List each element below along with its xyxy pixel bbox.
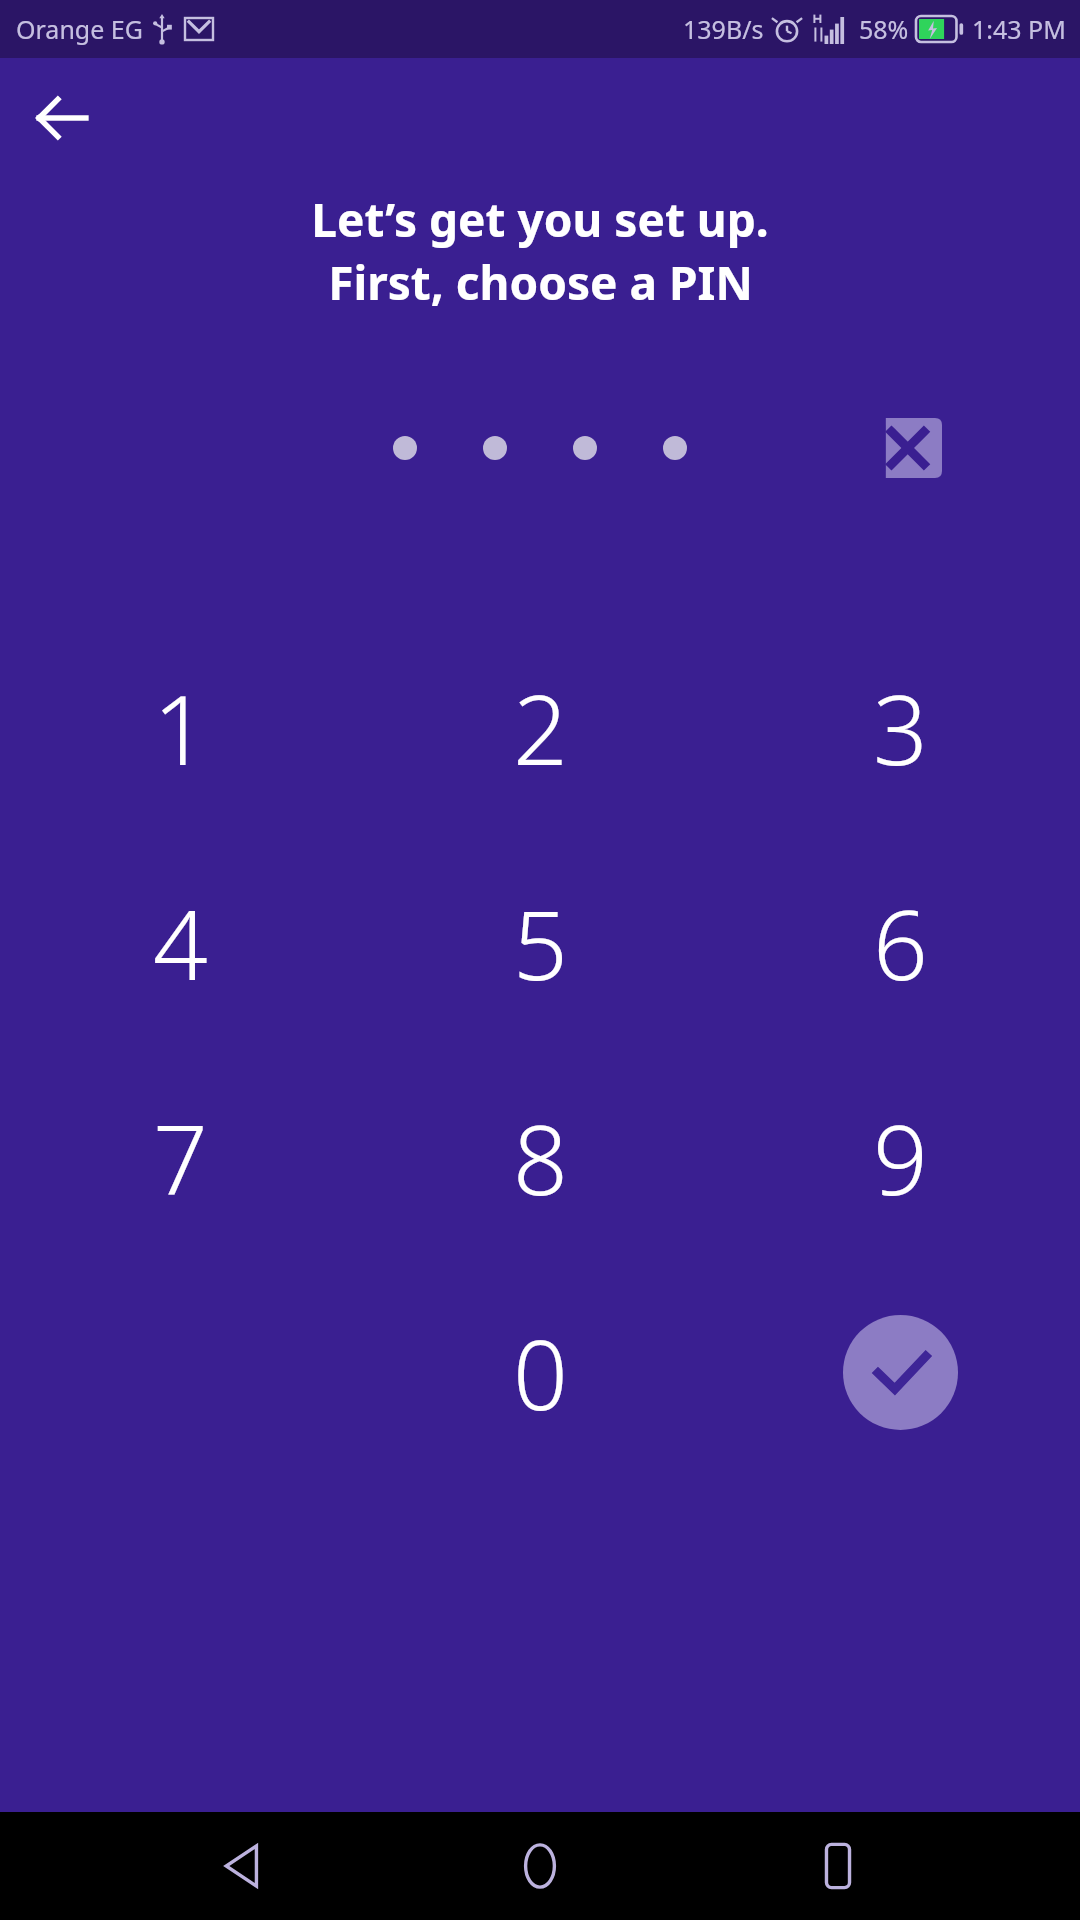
staticText: 9	[873, 1092, 928, 1223]
staticText: 2	[513, 662, 568, 793]
button[interactable]: Recents	[783, 1812, 893, 1920]
button[interactable]: 1	[0, 620, 360, 835]
button[interactable]: 8	[360, 1050, 720, 1265]
button[interactable]: 5	[360, 835, 720, 1050]
staticText: 1	[153, 662, 208, 793]
staticText: Let’s get you set up.	[311, 188, 769, 251]
staticText: 1:43 PM	[972, 12, 1066, 46]
button[interactable]: 0	[360, 1265, 720, 1480]
staticText: Orange EG	[16, 12, 143, 46]
staticText: 7	[153, 1092, 208, 1223]
button[interactable]: Home	[485, 1812, 595, 1920]
staticText: 4	[153, 877, 208, 1008]
button[interactable]: Back	[188, 1812, 298, 1920]
staticText: 3	[873, 662, 928, 793]
staticText: First, choose a PIN	[328, 251, 753, 314]
button[interactable]: 4	[0, 835, 360, 1050]
staticText: 5	[513, 877, 568, 1008]
staticText: 8	[513, 1092, 568, 1223]
staticText: 6	[873, 877, 928, 1008]
staticText: 58%	[859, 12, 909, 46]
button[interactable]: 6	[720, 835, 1080, 1050]
button[interactable]: 3	[720, 620, 1080, 835]
button[interactable]: 9	[720, 1050, 1080, 1265]
staticText: 139B/s	[683, 12, 764, 46]
button[interactable]: Confirm	[720, 1265, 1080, 1480]
button[interactable]: Backspace	[845, 408, 961, 488]
button[interactable]: Back	[30, 86, 94, 150]
staticText: 0	[513, 1307, 568, 1438]
button[interactable]: 7	[0, 1050, 360, 1265]
button[interactable]: 2	[360, 620, 720, 835]
